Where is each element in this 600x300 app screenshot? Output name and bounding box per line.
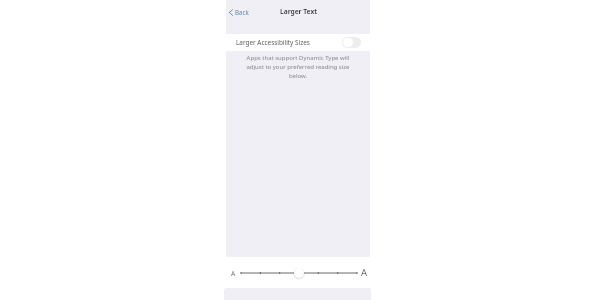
button[interactable]: Larger Accessibility Sizes — [226, 34, 370, 51]
staticText: Larger Accessibility Sizes — [236, 38, 310, 47]
staticText: Back — [235, 8, 249, 16]
staticText: A — [361, 266, 368, 279]
staticText: Larger Text — [280, 7, 318, 16]
staticText: Apps that support Dynamic Type will adju… — [240, 54, 356, 80]
staticText: A — [231, 269, 236, 278]
button[interactable]: Larger Accessibility Sizes toggle — [342, 37, 361, 48]
button[interactable]: Text size slider — [241, 265, 357, 281]
button[interactable]: Back — [228, 6, 250, 18]
